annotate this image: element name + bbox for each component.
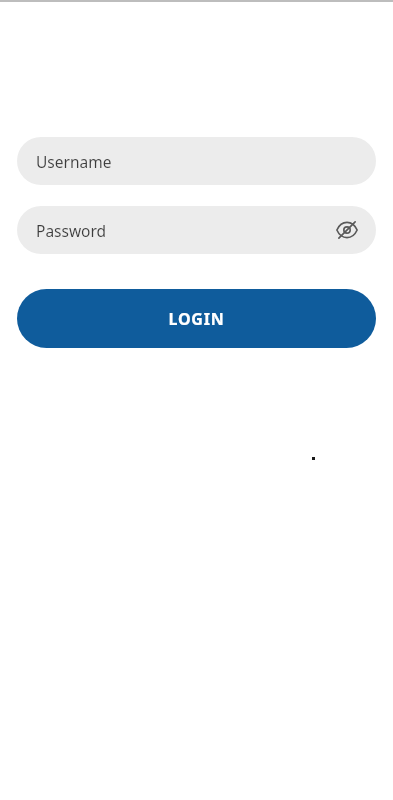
button[interactable]: Show password xyxy=(332,215,362,245)
staticText: LOGIN xyxy=(168,308,225,330)
staticText: Username xyxy=(36,151,112,172)
staticText: Password xyxy=(36,220,107,241)
button[interactable]: Username xyxy=(17,137,376,185)
button[interactable]: Password xyxy=(17,206,376,254)
button[interactable]: LOGIN xyxy=(17,289,376,348)
